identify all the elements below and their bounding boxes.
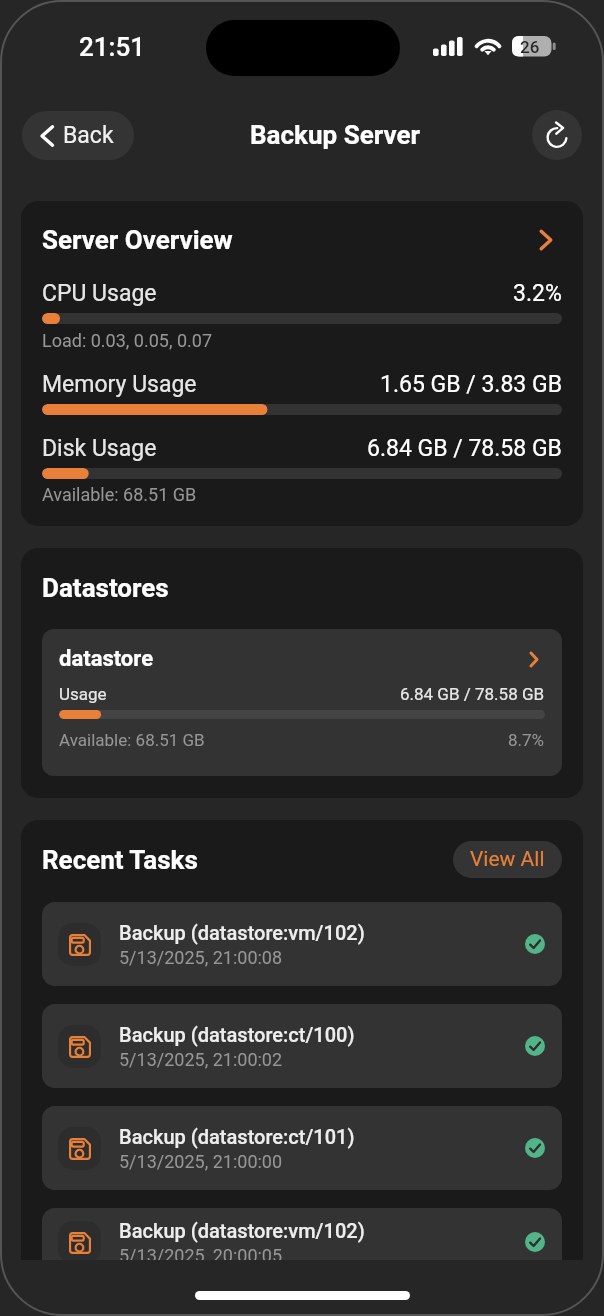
button[interactable]: Backup (datastore:ct/100): [42, 1004, 562, 1088]
staticText: 21:51: [79, 32, 146, 62]
button[interactable]: datastore: [42, 629, 562, 776]
staticText: 5/13/2025, 21:00:00: [119, 1151, 283, 1172]
staticText: Backup (datastore:vm/102): [119, 1219, 365, 1242]
staticText: Backup Server: [250, 120, 420, 150]
staticText: 3.2%: [513, 280, 562, 307]
staticText: 5/13/2025, 20:00:05: [119, 1245, 283, 1266]
staticText: 1.65 GB / 3.83 GB: [380, 371, 562, 398]
staticText: 26: [520, 37, 540, 57]
staticText: Available: 68.51 GB: [59, 730, 508, 750]
button[interactable]: View All: [453, 841, 562, 878]
button[interactable]: Backup (datastore:ct/101): [42, 1106, 562, 1190]
staticText: Available: 68.51 GB: [42, 484, 197, 505]
staticText: Datastores: [42, 573, 169, 603]
staticText: 6.84 GB / 78.58 GB: [400, 684, 545, 704]
staticText: 5/13/2025, 21:00:08: [119, 947, 283, 968]
button[interactable]: Back: [22, 111, 134, 160]
staticText: View All: [470, 847, 545, 872]
staticText: Memory Usage: [42, 371, 380, 398]
staticText: CPU Usage: [42, 280, 513, 307]
staticText: Backup (datastore:ct/100): [119, 1023, 355, 1046]
staticText: 8.7%: [508, 730, 545, 750]
staticText: Usage: [59, 684, 400, 704]
button[interactable]: Backup (datastore:vm/102): [42, 1208, 562, 1276]
staticText: Server Overview: [42, 225, 539, 255]
staticText: datastore: [59, 646, 529, 672]
button[interactable]: Refresh: [532, 110, 582, 160]
staticText: Backup (datastore:vm/102): [119, 921, 365, 944]
button[interactable]: Server Overview: [42, 225, 562, 255]
button[interactable]: Backup (datastore:vm/102): [42, 902, 562, 986]
staticText: Back: [63, 122, 114, 149]
staticText: Load: 0.03, 0.05, 0.07: [42, 330, 213, 351]
staticText: Backup (datastore:ct/101): [119, 1125, 355, 1148]
staticText: 6.84 GB / 78.58 GB: [367, 435, 562, 462]
staticText: Recent Tasks: [42, 845, 453, 875]
staticText: Disk Usage: [42, 435, 367, 462]
staticText: 5/13/2025, 21:00:02: [119, 1049, 283, 1070]
